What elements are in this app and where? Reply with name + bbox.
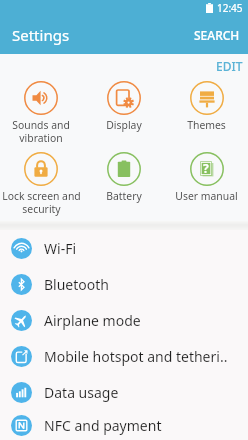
staticText: Display — [106, 118, 142, 132]
staticText: Sounds and vibration — [12, 118, 70, 145]
button[interactable]: Mobile hotspot and tetheri.. — [0, 338, 248, 374]
staticText: Data usage — [44, 383, 119, 402]
staticText: Wi-Fi — [44, 239, 77, 258]
button[interactable]: Lock screen and security — [0, 145, 82, 216]
staticText: Battery — [106, 189, 142, 203]
staticText: NFC and payment — [44, 416, 162, 435]
button[interactable]: Data usage — [0, 374, 248, 410]
staticText: EDIT — [216, 58, 243, 72]
button[interactable]: Airplane mode — [0, 302, 248, 338]
button[interactable]: Themes — [165, 74, 248, 132]
staticText: 12:45 — [217, 1, 243, 15]
staticText: SEARCH — [194, 27, 240, 43]
button[interactable]: Display — [82, 74, 165, 132]
staticText: ? — [203, 160, 209, 176]
button[interactable]: NFC and payment — [0, 410, 248, 440]
staticText: Airplane mode — [44, 311, 141, 330]
button[interactable]: Bluetooth — [0, 266, 248, 302]
staticText: User manual — [175, 189, 238, 203]
button[interactable]: SEARCH — [186, 19, 248, 51]
staticText: Bluetooth — [44, 275, 109, 294]
button[interactable]: EDIT — [206, 54, 248, 74]
button[interactable]: ? — [165, 145, 248, 203]
staticText: Themes — [187, 118, 226, 132]
button[interactable]: Battery — [82, 145, 165, 203]
button[interactable]: Sounds and vibration — [0, 74, 82, 145]
staticText: Mobile hotspot and tetheri.. — [44, 347, 228, 366]
staticText: Lock screen and security — [2, 189, 81, 216]
staticText: Settings — [12, 25, 70, 45]
button[interactable]: Wi-Fi — [0, 230, 248, 266]
